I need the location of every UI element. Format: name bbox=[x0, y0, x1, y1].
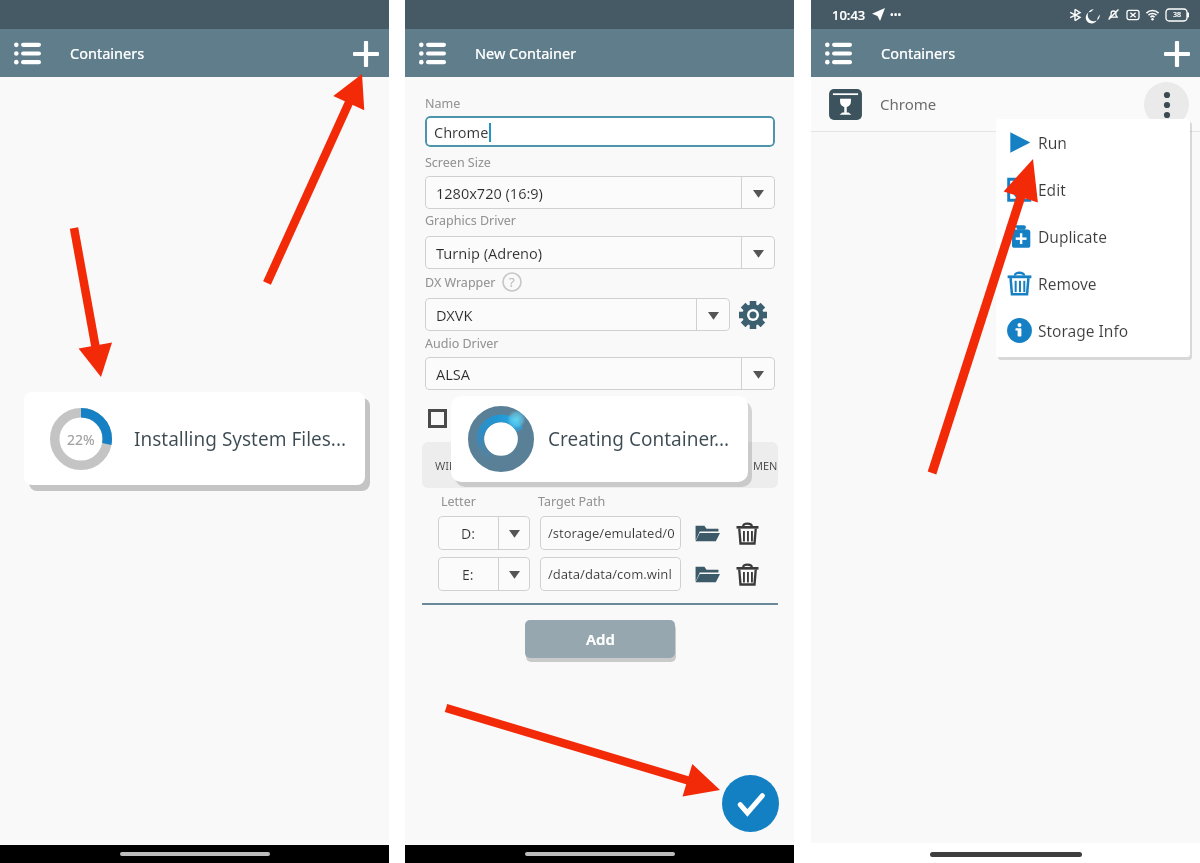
button[interactable]: E: bbox=[438, 557, 530, 591]
button[interactable]: Add bbox=[525, 620, 675, 658]
staticText: 22% bbox=[67, 430, 95, 449]
staticText: 10:43 bbox=[832, 6, 866, 24]
button[interactable]: /data/data/com.winl bbox=[540, 557, 681, 591]
staticText: 1280x720 (16:9) bbox=[436, 183, 543, 203]
staticText: ALSA bbox=[436, 364, 471, 384]
staticText: Run bbox=[1038, 132, 1067, 153]
button[interactable]: Chrome bbox=[425, 116, 775, 147]
staticText: MEN bbox=[753, 458, 778, 473]
staticText: DX Wrapper bbox=[425, 274, 496, 291]
button[interactable]: Browse bbox=[690, 557, 724, 591]
button[interactable]: Storage Info bbox=[996, 307, 1190, 354]
button[interactable]: Delete bbox=[730, 557, 764, 591]
button[interactable]: Run bbox=[996, 119, 1190, 166]
staticText: Containers bbox=[70, 43, 145, 63]
button[interactable]: Browse bbox=[690, 516, 724, 550]
button[interactable]: Add bbox=[1153, 30, 1200, 77]
staticText: Creating Container... bbox=[548, 426, 730, 452]
button[interactable]: Menu bbox=[405, 29, 460, 77]
staticText: WIN bbox=[435, 458, 458, 473]
staticText: Installing System Files... bbox=[134, 426, 347, 452]
button[interactable]: Duplicate bbox=[996, 213, 1190, 260]
button[interactable]: MEN bbox=[753, 458, 778, 473]
staticText: Turnip (Adreno) bbox=[436, 243, 543, 263]
button[interactable]: Remove bbox=[996, 260, 1190, 307]
button[interactable]: Checkbox bbox=[428, 409, 447, 428]
staticText: Letter bbox=[441, 493, 476, 510]
button[interactable]: Settings bbox=[739, 301, 767, 329]
button[interactable]: Menu bbox=[0, 29, 55, 77]
button[interactable]: Confirm bbox=[722, 775, 779, 832]
staticText: Graphics Driver bbox=[425, 212, 516, 229]
button[interactable]: 22% bbox=[24, 392, 365, 485]
staticText: ? bbox=[509, 273, 515, 291]
button[interactable]: Chrome bbox=[811, 77, 1200, 131]
button[interactable]: /storage/emulated/0 bbox=[540, 516, 681, 550]
button[interactable]: 1280x720 (16:9) bbox=[425, 176, 775, 209]
staticText: ••• bbox=[890, 8, 902, 22]
staticText: E: bbox=[462, 565, 474, 584]
button[interactable]: Delete bbox=[730, 516, 764, 550]
button[interactable]: More options bbox=[1144, 82, 1189, 127]
staticText: New Container bbox=[475, 43, 577, 63]
staticText: Chrome bbox=[434, 122, 489, 142]
button[interactable]: Edit bbox=[996, 166, 1190, 213]
button[interactable]: WIN bbox=[435, 458, 458, 473]
staticText: Duplicate bbox=[1038, 226, 1107, 247]
button[interactable]: Add bbox=[342, 30, 389, 77]
button[interactable]: D: bbox=[438, 516, 530, 550]
staticText: Edit bbox=[1038, 179, 1066, 200]
staticText: Name bbox=[425, 95, 461, 112]
staticText: Remove bbox=[1038, 273, 1097, 294]
staticText: 38 bbox=[1173, 10, 1182, 20]
staticText: Chrome bbox=[880, 94, 937, 114]
staticText: Add bbox=[586, 629, 615, 649]
staticText: DXVK bbox=[436, 305, 473, 325]
button[interactable]: ALSA bbox=[425, 357, 775, 390]
staticText: Audio Driver bbox=[425, 335, 499, 352]
staticText: Storage Info bbox=[1038, 320, 1129, 341]
staticText: /data/data/com.winl bbox=[548, 565, 672, 583]
staticText: /storage/emulated/0 bbox=[548, 524, 675, 542]
staticText: Screen Size bbox=[425, 154, 491, 171]
staticText: Target Path bbox=[538, 493, 606, 510]
button[interactable]: Turnip (Adreno) bbox=[425, 236, 775, 269]
staticText: Containers bbox=[881, 43, 956, 63]
staticText: D: bbox=[461, 524, 475, 543]
button[interactable]: DXVK bbox=[425, 298, 730, 331]
button[interactable]: Menu bbox=[811, 29, 866, 77]
